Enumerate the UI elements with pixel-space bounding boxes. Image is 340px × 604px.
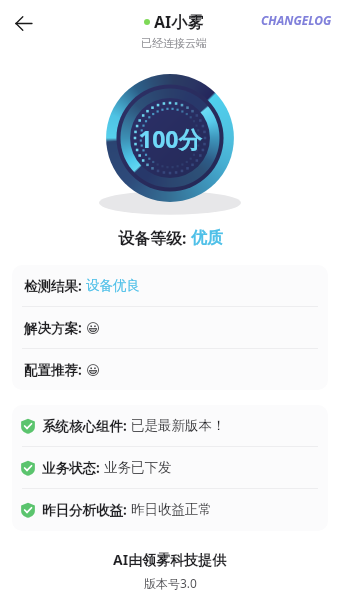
button[interactable]: 系统核心组件: — [12, 405, 328, 446]
staticText: 业务状态: — [42, 459, 104, 477]
staticText: 100分 — [139, 123, 202, 154]
staticText: 昨日分析收益: — [42, 501, 131, 519]
staticText: 配置推荐: — [24, 361, 86, 379]
staticText: 版本号3.0 — [144, 575, 197, 591]
staticText: 昨日收益正常 — [131, 501, 212, 518]
staticText: 设备等级: — [118, 227, 191, 249]
button[interactable]: Back — [7, 7, 39, 39]
button[interactable]: 业务状态: — [12, 447, 328, 488]
staticText: CHANGELOG — [261, 12, 332, 28]
staticText: 设备优良 — [86, 277, 140, 294]
staticText: 已经连接云端 — [141, 36, 207, 50]
staticText: 😀 — [86, 362, 101, 378]
staticText: 已是最新版本！ — [131, 417, 226, 434]
staticText: 系统核心组件: — [42, 417, 131, 435]
button[interactable]: CHANGELOG — [255, 8, 338, 32]
staticText: 解决方案: — [24, 319, 86, 337]
staticText: AI小雾 — [154, 11, 204, 33]
button[interactable]: 检测结果: — [12, 265, 328, 306]
staticText: AI由领雾科技提供 — [113, 550, 227, 569]
staticText: 优质 — [191, 228, 223, 248]
button[interactable]: 解决方案: — [12, 307, 328, 348]
staticText: 😀 — [86, 320, 101, 336]
staticText: 业务已下发 — [104, 459, 172, 476]
button[interactable]: 配置推荐: — [12, 349, 328, 390]
button[interactable]: 昨日分析收益: — [12, 489, 328, 530]
staticText: 检测结果: — [24, 277, 86, 295]
